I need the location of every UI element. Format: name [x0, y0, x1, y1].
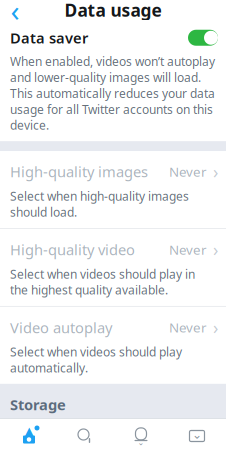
button[interactable]: Search	[57, 419, 113, 453]
staticText: Storage	[10, 395, 66, 414]
button[interactable]: Home	[1, 419, 57, 453]
staticText: High-quality images	[10, 162, 148, 181]
staticText: ›	[213, 238, 218, 261]
staticText: ⌄	[137, 438, 144, 447]
button[interactable]: High-quality images	[0, 151, 226, 228]
staticText: ▲	[23, 424, 34, 440]
staticText: When enabled, videos won’t autoplay and …	[10, 53, 215, 133]
staticText: Never	[169, 163, 207, 180]
staticText: ›	[213, 316, 218, 339]
staticText: Select when high-quality images should l…	[10, 188, 189, 220]
button[interactable]: Data saver toggle	[187, 29, 219, 47]
staticText: Video autoplay	[10, 318, 112, 337]
staticText: ⌄	[192, 428, 202, 441]
staticText: Media storage	[10, 430, 114, 450]
staticText: 143.8 MB	[147, 431, 207, 449]
staticText: ›	[213, 160, 218, 183]
button[interactable]: High-quality video	[0, 229, 226, 306]
staticText: Never	[169, 319, 207, 336]
staticText: Select when videos should play in the hi…	[10, 266, 195, 298]
button[interactable]: Video autoplay	[0, 307, 226, 384]
button[interactable]: Back	[0, 0, 30, 20]
staticText: Data usage	[64, 0, 161, 21]
staticText: High-quality video	[10, 240, 135, 259]
button[interactable]: Messages	[169, 419, 225, 453]
button[interactable]: Notifications	[113, 419, 169, 453]
staticText: Data saver	[10, 28, 88, 47]
staticText: Never	[169, 241, 207, 258]
staticText: Select when videos should play automatic…	[10, 344, 182, 376]
staticText: ‹	[10, 0, 19, 29]
button[interactable]: Media storage	[0, 420, 226, 453]
